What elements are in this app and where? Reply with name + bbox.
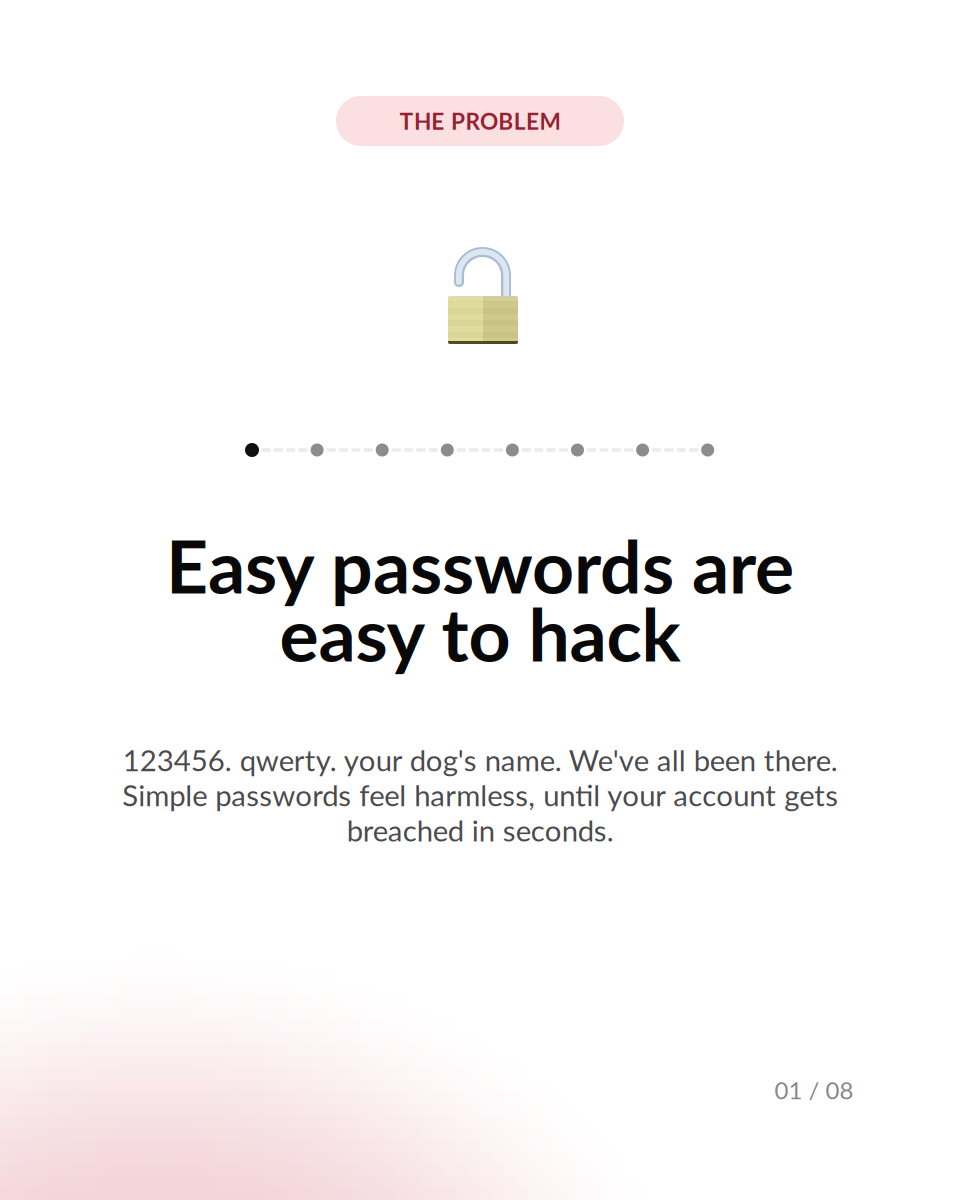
button[interactable]: Go to slide 3 [376,443,389,456]
button[interactable]: Go to slide 7 [636,443,649,456]
button[interactable]: Go to slide 1 [245,443,259,457]
staticText: THE PROBLEM [399,107,560,135]
button[interactable]: Go to slide 8 [701,443,714,456]
button[interactable]: Go to slide 4 [441,443,454,456]
staticText: 123456. qwerty. your dog's name. We've a… [122,742,838,848]
button[interactable]: Go to slide 6 [571,443,584,456]
staticText: Easy passwords are [166,521,794,609]
staticText: 01 / 08 [774,1076,853,1104]
staticText: easy to hack [279,589,680,677]
button[interactable]: Go to slide 5 [506,443,519,456]
button[interactable]: Go to slide 2 [311,443,324,456]
button[interactable]: THE PROBLEM [336,96,624,146]
